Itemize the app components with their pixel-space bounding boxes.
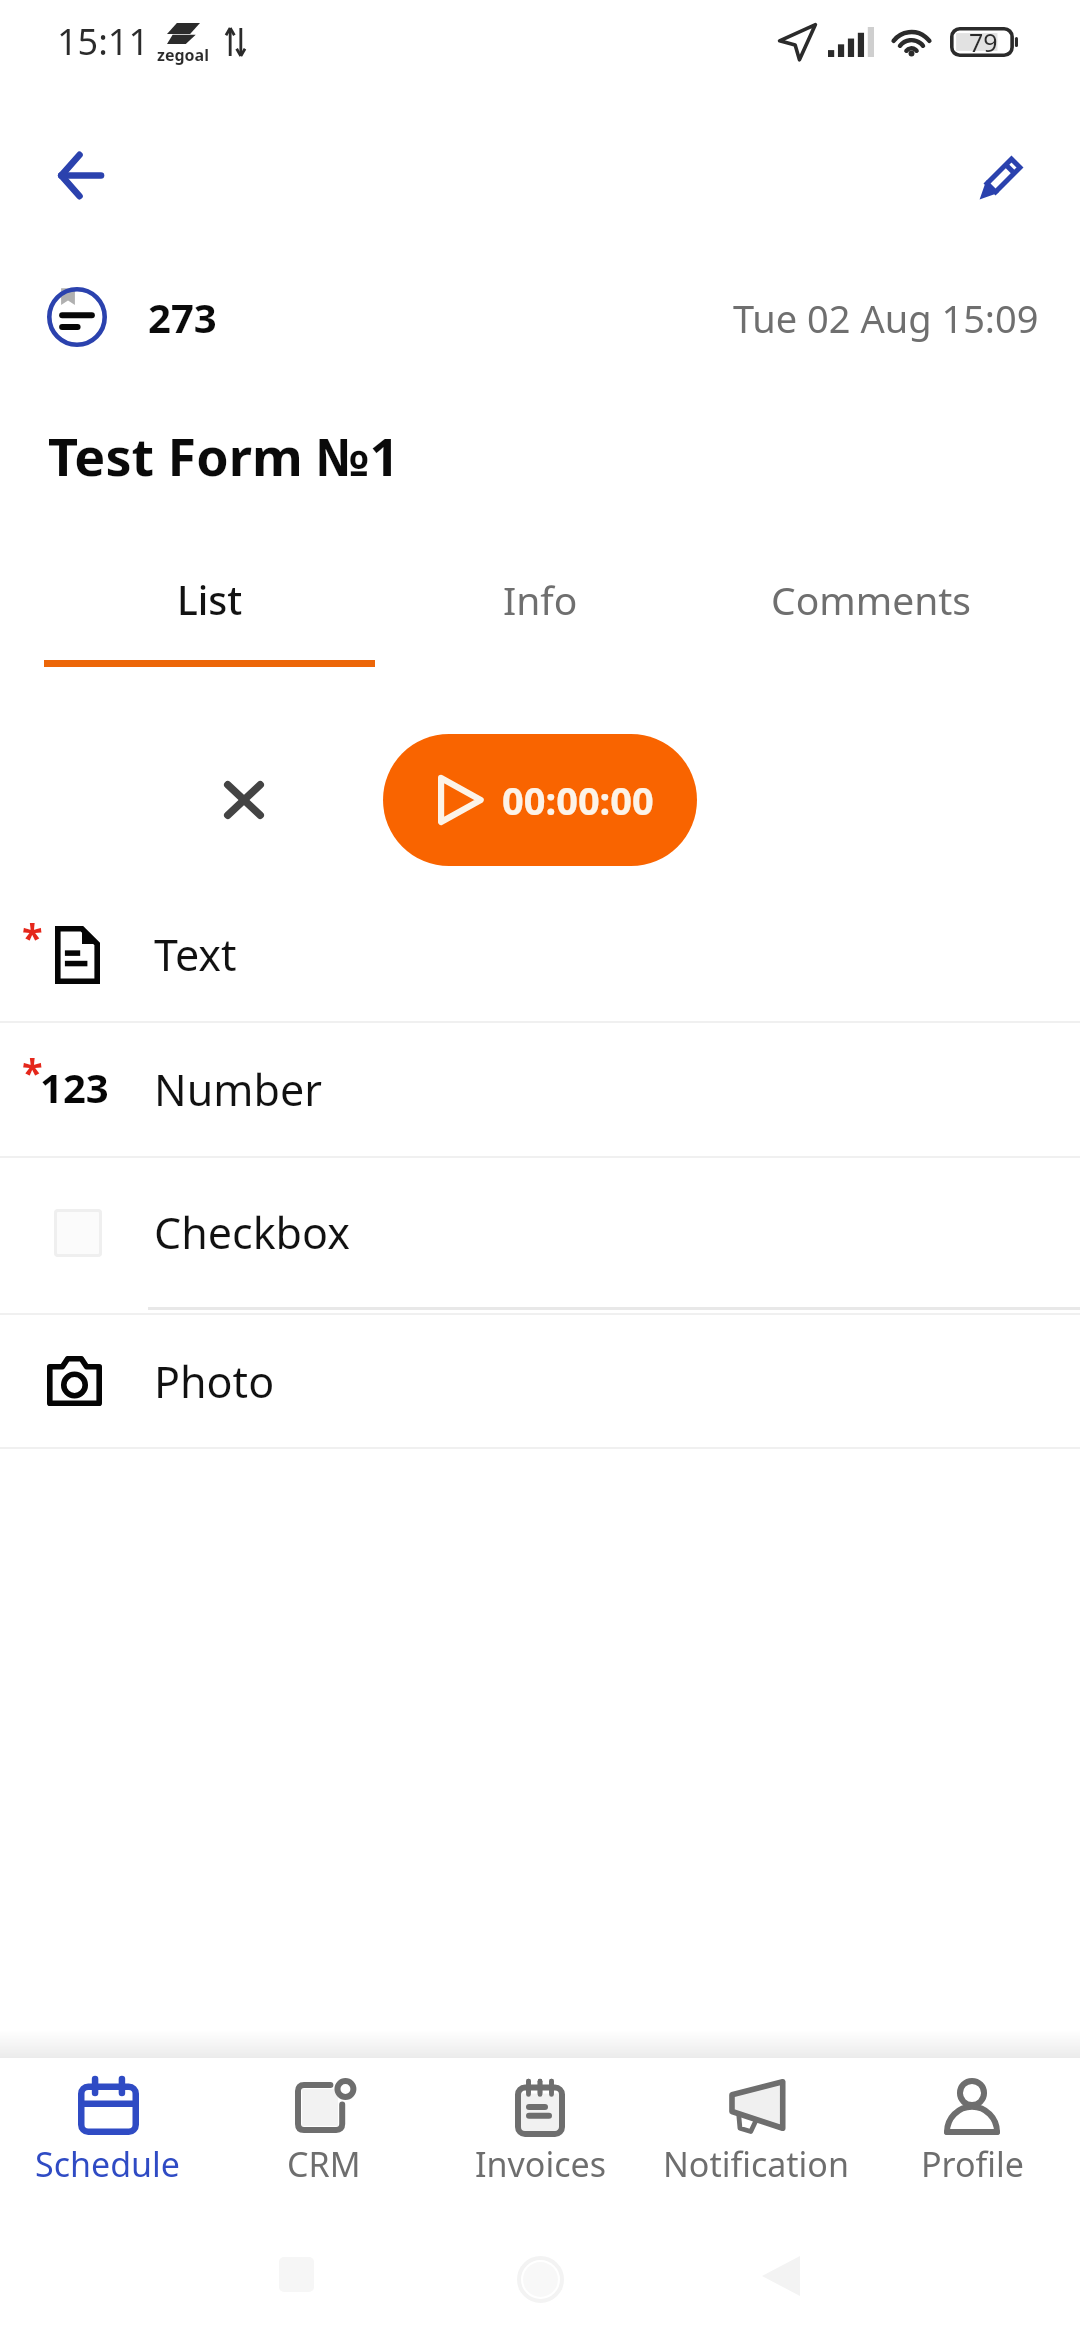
button[interactable]: List — [44, 530, 375, 671]
button[interactable]: Checkbox — [0, 1158, 1080, 1307]
staticText: Schedule — [35, 2141, 181, 2187]
staticText: 15:11 — [57, 17, 150, 66]
staticText: 123 — [40, 1060, 109, 1114]
staticText: Profile — [921, 2141, 1024, 2187]
button[interactable]: 00:00:00 — [383, 734, 697, 866]
button[interactable]: Cancel timer — [198, 754, 290, 846]
staticText: 79 — [969, 25, 998, 59]
button[interactable]: Schedule — [0, 2058, 216, 2214]
staticText: CRM — [287, 2141, 361, 2187]
staticText: Notification — [663, 2141, 849, 2187]
button[interactable]: Comments — [706, 530, 1037, 671]
button[interactable]: Back — [29, 125, 129, 225]
button[interactable]: Notification — [648, 2058, 864, 2214]
button[interactable]: Invoices — [432, 2058, 648, 2214]
staticText: * — [22, 911, 43, 963]
staticText: Tue 02 Aug 15:09 — [733, 292, 1039, 344]
button[interactable]: Home — [517, 2256, 564, 2303]
button[interactable]: * — [0, 888, 1080, 1021]
button[interactable]: Edit — [954, 125, 1054, 225]
staticText: Info — [503, 573, 578, 626]
button[interactable]: Info — [375, 530, 706, 671]
staticText: Text — [154, 925, 237, 984]
staticText: Comments — [771, 573, 972, 626]
staticText: Test Form №1 — [48, 420, 400, 491]
button[interactable]: Photo — [0, 1315, 1080, 1447]
staticText: List — [177, 573, 243, 626]
button[interactable]: 123 — [0, 1023, 1080, 1156]
button[interactable]: Back — [762, 2256, 800, 2296]
button[interactable]: Profile — [864, 2058, 1080, 2214]
staticText: * — [22, 1046, 43, 1098]
staticText: zegoal — [157, 44, 209, 66]
staticText: Invoices — [475, 2141, 606, 2187]
button[interactable]: CRM — [216, 2058, 432, 2214]
staticText: Photo — [154, 1352, 275, 1411]
staticText: 00:00:00 — [502, 774, 654, 826]
staticText: Checkbox — [154, 1203, 350, 1262]
staticText: 273 — [148, 290, 217, 344]
staticText: Number — [154, 1060, 322, 1119]
